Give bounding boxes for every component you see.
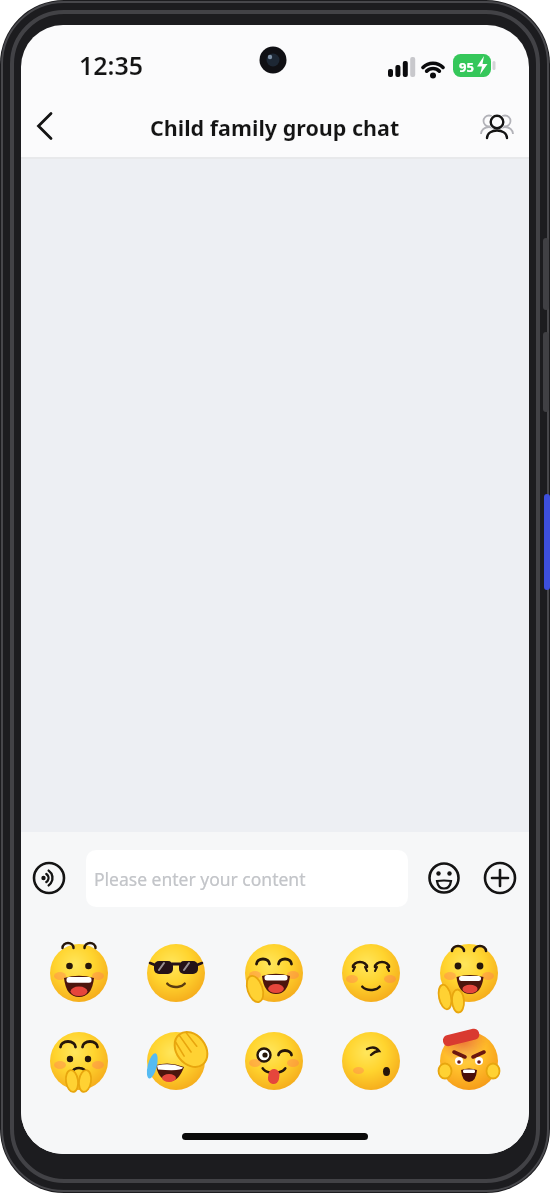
- staticText: 95: [459, 58, 474, 76]
- button[interactable]: [144, 941, 208, 1005]
- button[interactable]: [242, 941, 306, 1005]
- button[interactable]: [437, 1029, 501, 1093]
- staticText: Please enter your content: [94, 867, 306, 891]
- staticText: 12:35: [79, 48, 144, 82]
- button[interactable]: [242, 1029, 306, 1093]
- button[interactable]: [47, 941, 111, 1005]
- button[interactable]: Please enter your content: [86, 850, 408, 907]
- staticText: Child family group chat: [150, 113, 400, 142]
- button[interactable]: [47, 1029, 111, 1093]
- button[interactable]: [144, 1029, 208, 1093]
- button[interactable]: [482, 860, 518, 896]
- button[interactable]: [475, 104, 519, 148]
- button[interactable]: [339, 941, 403, 1005]
- button[interactable]: [437, 941, 501, 1005]
- button[interactable]: [24, 104, 68, 148]
- button[interactable]: [31, 860, 67, 896]
- button[interactable]: [339, 1029, 403, 1093]
- button[interactable]: [426, 860, 462, 896]
